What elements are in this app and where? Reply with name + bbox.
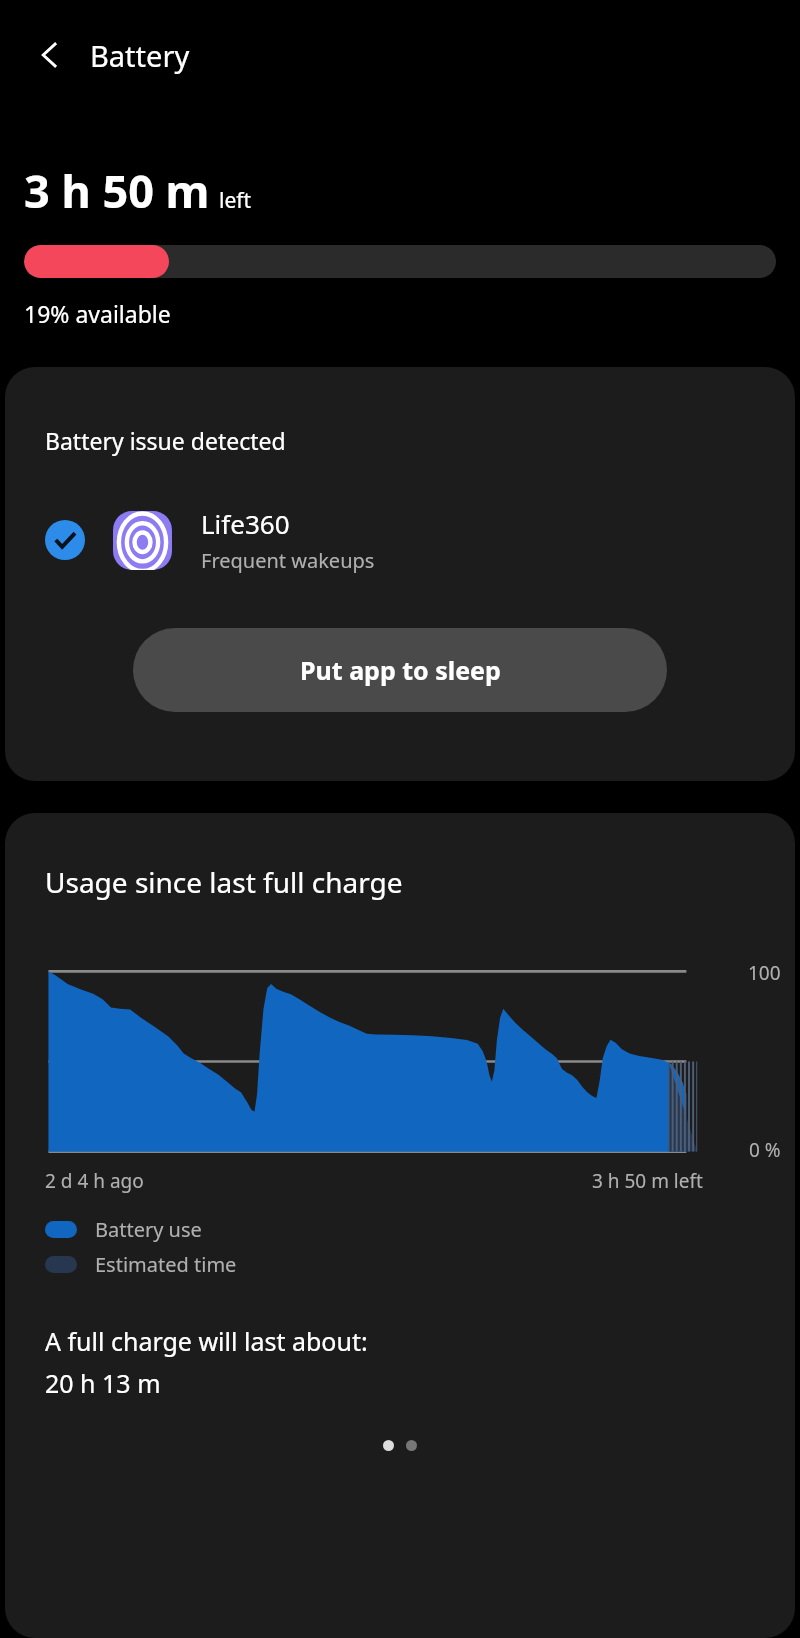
button[interactable]: Put app to sleep [133,628,667,712]
staticText: A full charge will last about: [45,1324,368,1358]
staticText: Put app to sleep [300,653,501,687]
button[interactable]: Page 1 [383,1440,394,1451]
staticText: 100 [748,960,781,986]
button[interactable]: Page 2 [406,1440,417,1451]
staticText: Estimated time [95,1251,237,1278]
staticText: Usage since last full charge [45,863,403,901]
staticText: 20 h 13 m [45,1366,161,1400]
staticText: Battery use [95,1216,202,1243]
staticText: Life360 [201,506,290,541]
staticText: 3 h 50 m left [592,1168,703,1194]
staticText: Battery issue detected [45,425,286,456]
button[interactable]: Back [22,27,78,83]
button[interactable]: Life360 [5,506,795,574]
staticText: 3 h 50 m [24,160,210,221]
staticText: Battery [90,36,190,75]
staticText: 0 % [749,1137,781,1163]
staticText: 19% available [24,298,171,329]
staticText: Frequent wakeups [201,547,375,574]
staticText: 2 d 4 h ago [45,1168,144,1194]
staticText: left [219,186,252,215]
